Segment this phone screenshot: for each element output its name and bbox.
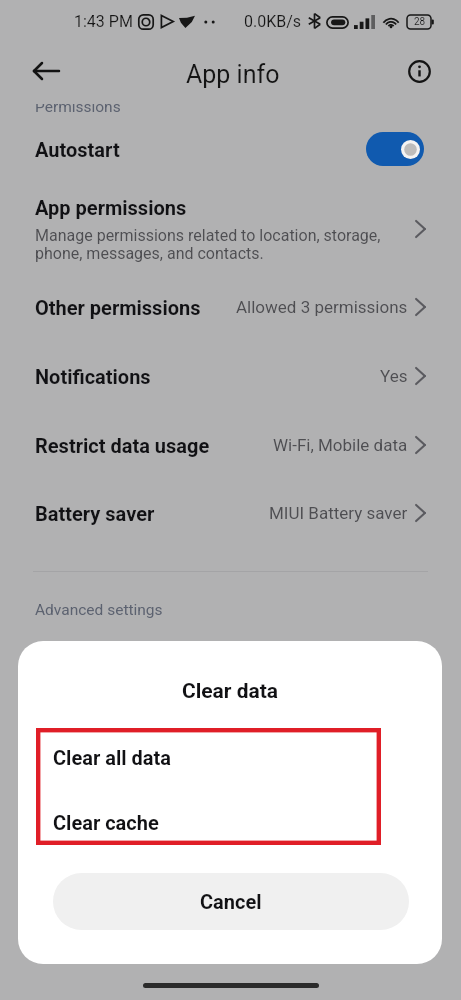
staticText: Cancel	[200, 890, 262, 913]
staticText: 28	[414, 16, 426, 28]
button[interactable]: Restrict data usage	[0, 411, 461, 479]
button[interactable]: Clear all data	[36, 728, 381, 786]
staticText: Other permissions	[35, 296, 201, 319]
button[interactable]: Back	[27, 52, 65, 90]
staticText: Allowed 3 permissions	[236, 297, 408, 317]
button[interactable]: Info	[404, 56, 434, 86]
staticText: Autostart	[35, 138, 120, 161]
staticText: Advanced settings	[35, 601, 163, 619]
staticText: App info	[186, 60, 280, 89]
staticText: Clear cache	[53, 811, 159, 834]
staticText: Permissions	[35, 104, 121, 112]
staticText: Clear data	[18, 679, 442, 704]
button[interactable]: Notifications	[0, 342, 461, 410]
button[interactable]: Battery saver	[0, 479, 461, 547]
button[interactable]: Clear cache	[36, 793, 381, 851]
staticText: Manage permissions related to location, …	[35, 226, 381, 263]
staticText: Battery saver	[35, 502, 155, 525]
staticText: Wi-Fi, Mobile data	[273, 435, 408, 455]
button[interactable]: App permissions	[0, 181, 461, 273]
staticText: Restrict data usage	[35, 434, 210, 457]
button[interactable]: Cancel	[53, 873, 409, 930]
staticText: Clear all data	[53, 746, 171, 769]
staticText: Notifications	[35, 365, 151, 388]
button[interactable]: Autostart	[0, 121, 461, 177]
staticText: 0.0KB/s	[244, 12, 302, 31]
staticText: App permissions	[35, 196, 187, 219]
button[interactable]: Other permissions	[0, 273, 461, 341]
staticText: MIUI Battery saver	[269, 503, 408, 523]
staticText: Yes	[380, 366, 408, 386]
staticText: 1:43 PM	[74, 12, 133, 31]
